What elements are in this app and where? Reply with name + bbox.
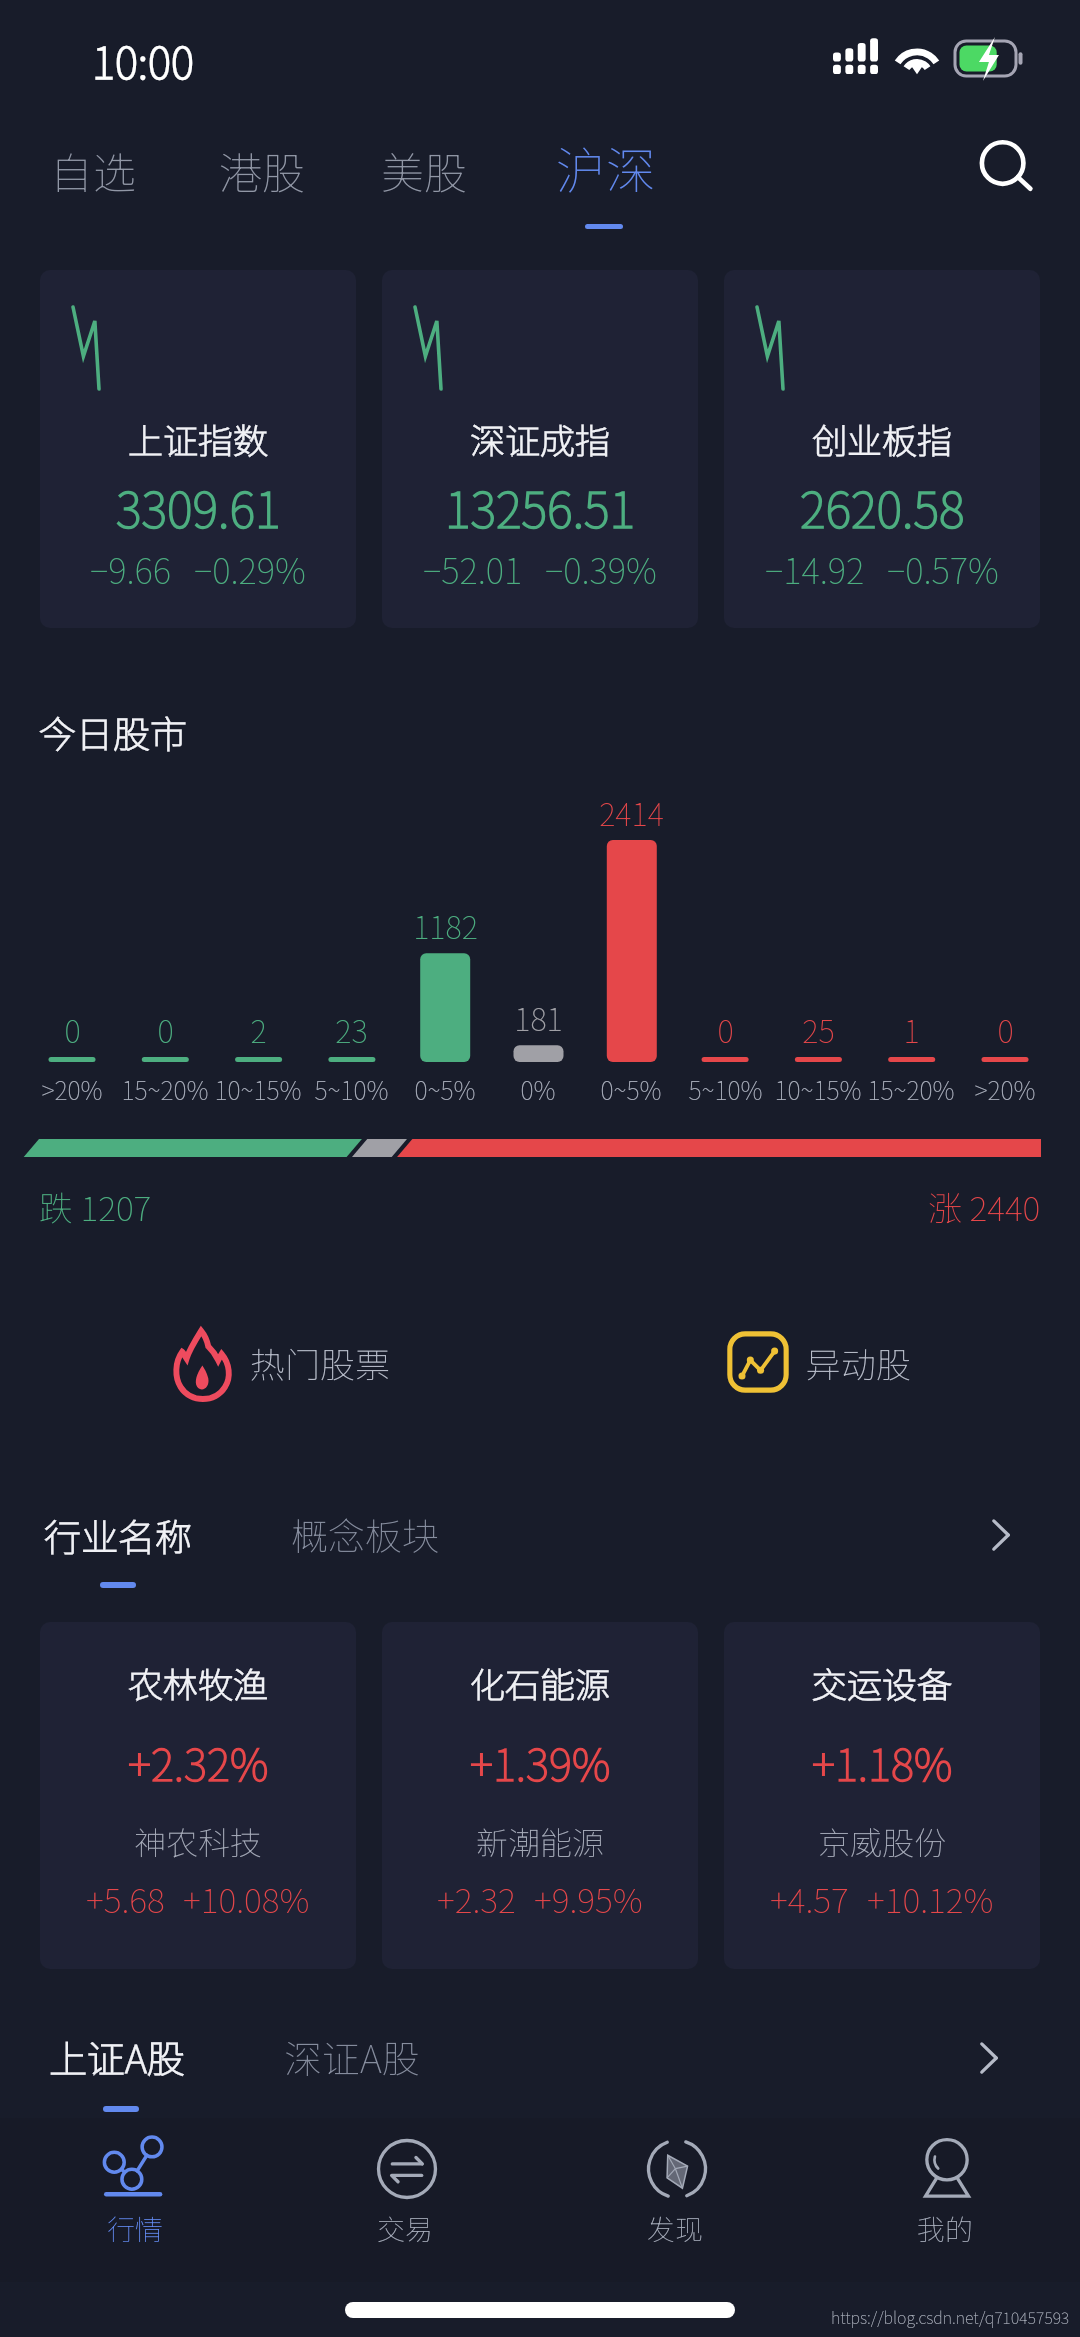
staticText: 10~15% — [214, 1071, 302, 1107]
staticText: 上证A股 — [49, 2029, 185, 2084]
staticText: 0 — [997, 1007, 1014, 1052]
staticText: 化石能源 — [470, 1657, 611, 1708]
button[interactable]: 化石能源 — [382, 1622, 698, 1969]
staticText: 自选 — [50, 139, 136, 201]
button[interactable]: 发现 — [565, 2128, 785, 2258]
staticText: +2.32% — [128, 1730, 269, 1794]
staticText: 跌 1207 — [39, 1182, 152, 1231]
staticText: 行业名称 — [44, 1508, 192, 1562]
staticText: −0.29% — [194, 543, 306, 594]
button[interactable]: 交易 — [295, 2128, 515, 2258]
staticText: 0 — [64, 1007, 81, 1052]
button[interactable]: More industries — [960, 1495, 1040, 1575]
staticText: 深证成指 — [470, 413, 611, 464]
button[interactable]: More stocks — [948, 2018, 1028, 2098]
staticText: 0 — [157, 1007, 174, 1052]
button[interactable]: 创业板指 — [724, 270, 1040, 628]
button[interactable]: 交运设备 — [724, 1622, 1040, 1969]
button[interactable]: 港股 — [197, 128, 319, 238]
staticText: 181 — [514, 995, 563, 1040]
staticText: 10:00 — [92, 28, 194, 92]
staticText: 涨 2440 — [928, 1182, 1041, 1231]
staticText: +4.57 — [770, 1874, 849, 1923]
staticText: 23 — [335, 1007, 368, 1052]
staticText: 3309.61 — [116, 471, 281, 542]
staticText: 13256.51 — [445, 471, 636, 542]
staticText: 交运设备 — [812, 1657, 953, 1708]
button[interactable]: 异动股 — [726, 1326, 912, 1398]
staticText: +1.18% — [812, 1730, 953, 1794]
staticText: 港股 — [219, 139, 305, 201]
staticText: 创业板指 — [812, 413, 953, 464]
staticText: 今日股市 — [39, 705, 187, 759]
button[interactable]: 行情 — [25, 2128, 245, 2258]
button[interactable]: 我的 — [835, 2128, 1055, 2258]
button[interactable]: 深证A股 — [284, 2029, 420, 2084]
staticText: 10~15% — [774, 1071, 862, 1107]
staticText: 0~5% — [414, 1071, 476, 1107]
staticText: 行情 — [107, 2208, 164, 2249]
staticText: 5~10% — [314, 1071, 389, 1107]
staticText: 交易 — [377, 2208, 434, 2249]
staticText: 5~10% — [688, 1071, 763, 1107]
staticText: 上证指数 — [128, 413, 269, 464]
staticText: 2620.58 — [800, 471, 965, 542]
staticText: 15~20% — [121, 1071, 209, 1107]
staticText: >20% — [41, 1071, 103, 1107]
staticText: 神农科技 — [134, 1818, 263, 1864]
staticText: −0.39% — [545, 543, 657, 594]
button[interactable]: 概念板块 — [291, 1507, 439, 1561]
staticText: 异动股 — [806, 1337, 912, 1388]
staticText: 农林牧渔 — [128, 1657, 269, 1708]
staticText: 1 — [903, 1007, 920, 1052]
button[interactable]: 自选 — [28, 128, 150, 238]
button[interactable]: 美股 — [359, 128, 481, 238]
button[interactable]: 农林牧渔 — [40, 1622, 356, 1969]
staticText: 美股 — [381, 139, 467, 201]
button[interactable]: Search — [965, 126, 1049, 210]
staticText: 我的 — [917, 2208, 974, 2249]
staticText: 0 — [717, 1007, 734, 1052]
button[interactable]: 上证指数 — [40, 270, 356, 628]
staticText: −9.66 — [90, 543, 172, 594]
staticText: 京威股份 — [818, 1818, 947, 1864]
staticText: +5.68 — [86, 1874, 165, 1923]
staticText: https://blog.csdn.net/q710457593 — [831, 2305, 1070, 2328]
button[interactable]: 上证A股 — [30, 2022, 250, 2127]
staticText: 2 — [250, 1007, 267, 1052]
staticText: +2.32 — [437, 1874, 516, 1923]
staticText: 沪深 — [556, 131, 656, 203]
staticText: −52.01 — [423, 543, 523, 594]
button[interactable]: 沪深 — [534, 128, 674, 238]
staticText: −14.92 — [765, 543, 865, 594]
staticText: 2414 — [599, 790, 664, 835]
button[interactable]: 热门股票 — [172, 1322, 391, 1402]
staticText: 1182 — [413, 903, 478, 948]
staticText: 发现 — [647, 2208, 704, 2249]
staticText: +1.39% — [470, 1730, 611, 1794]
staticText: 新潮能源 — [476, 1818, 605, 1864]
staticText: +9.95% — [534, 1874, 643, 1923]
staticText: +10.12% — [867, 1874, 994, 1923]
staticText: >20% — [974, 1071, 1036, 1107]
staticText: 0~5% — [600, 1071, 662, 1107]
staticText: 0% — [520, 1071, 556, 1107]
button[interactable]: 行业名称 — [30, 1498, 250, 1608]
staticText: −0.57% — [887, 543, 999, 594]
staticText: +10.08% — [183, 1874, 310, 1923]
staticText: 25 — [802, 1007, 835, 1052]
button[interactable]: 深证成指 — [382, 270, 698, 628]
staticText: 15~20% — [867, 1071, 955, 1107]
staticText: 热门股票 — [250, 1337, 391, 1388]
